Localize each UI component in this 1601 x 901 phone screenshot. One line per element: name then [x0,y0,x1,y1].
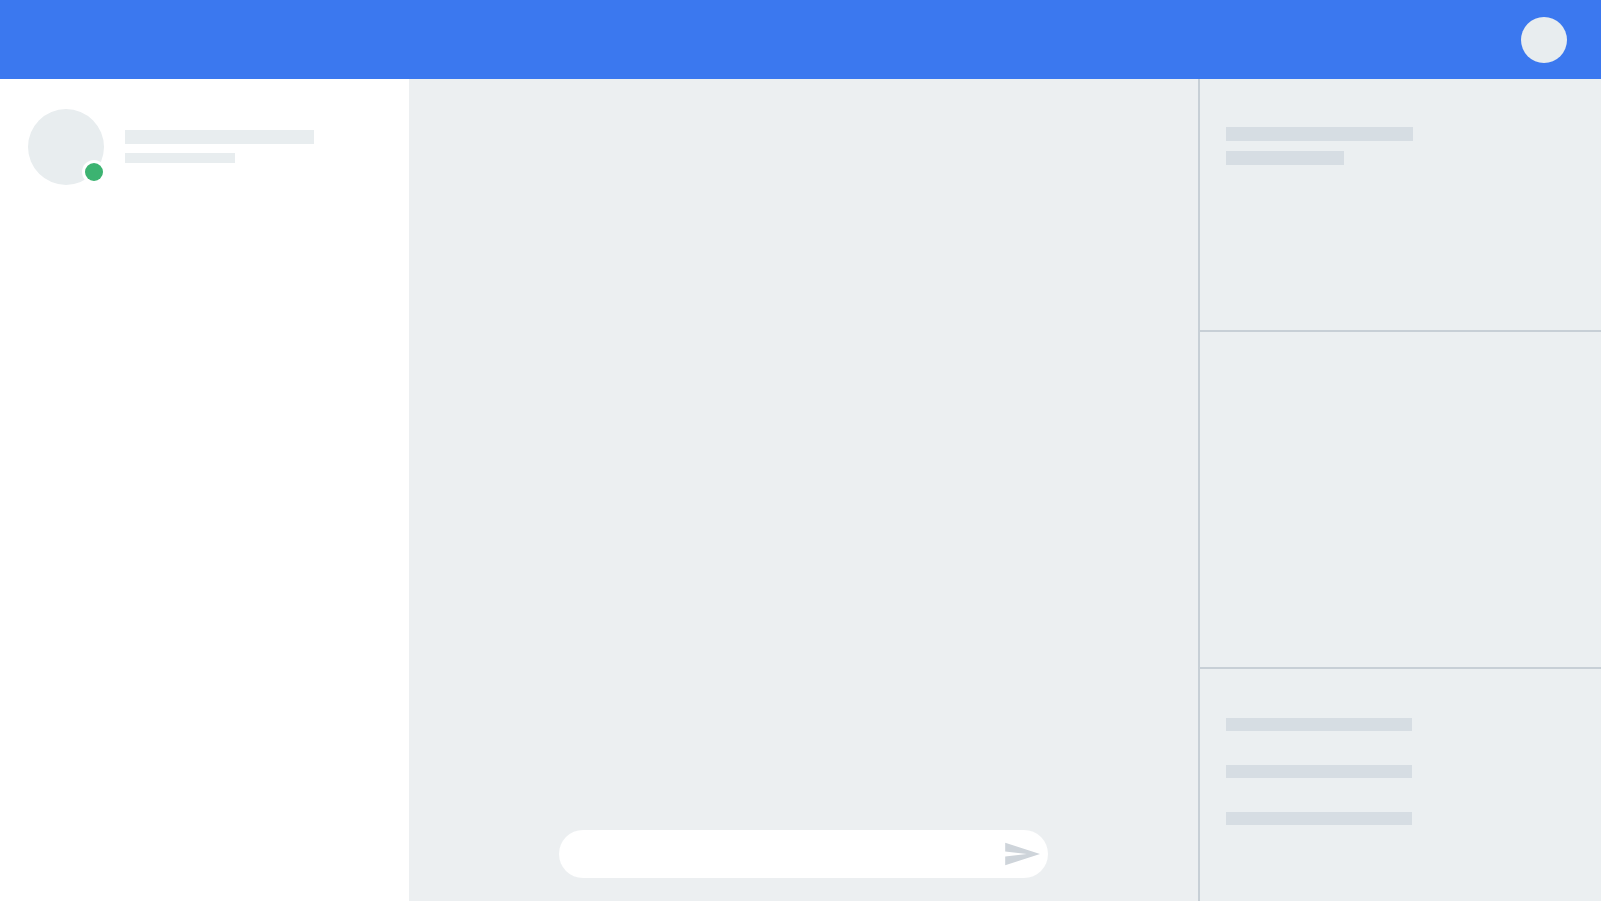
button[interactable] [0,79,409,214]
button[interactable] [1200,669,1601,901]
button[interactable]: Send [1000,832,1044,876]
button[interactable]: Account [1521,17,1567,63]
button[interactable] [1200,79,1601,330]
button[interactable]: Send [559,830,1048,878]
